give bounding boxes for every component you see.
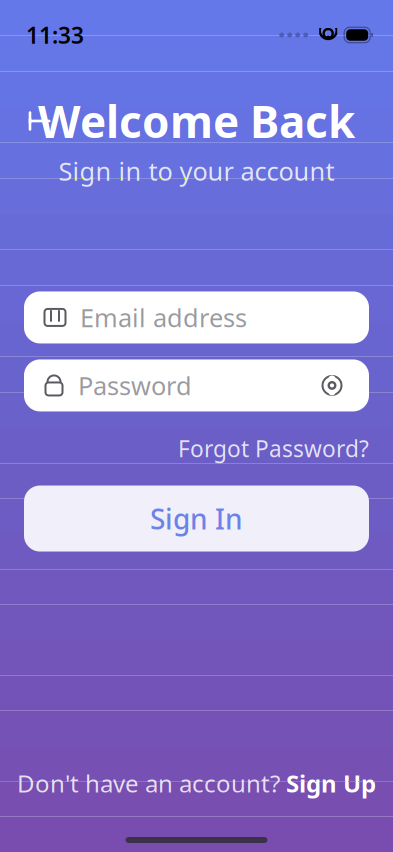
staticText: Sign Up [286,767,376,799]
staticText: Forgot Password? [178,433,369,463]
staticText: Password [78,369,192,402]
staticText: Sign In [150,500,243,537]
staticText: 11:33 [26,20,84,50]
button[interactable]: Don't have an account? [0,759,393,807]
staticText: Don't have an account? [17,767,280,799]
staticText: Welcome Back [38,92,355,150]
staticText: Email address [80,301,247,334]
button[interactable]: Forgot Password? [178,425,369,471]
button[interactable]: Show password [315,368,349,402]
button[interactable]: Sign In [24,485,369,551]
staticText: Sign in to your account [58,154,334,188]
button[interactable]: Back [14,98,60,144]
